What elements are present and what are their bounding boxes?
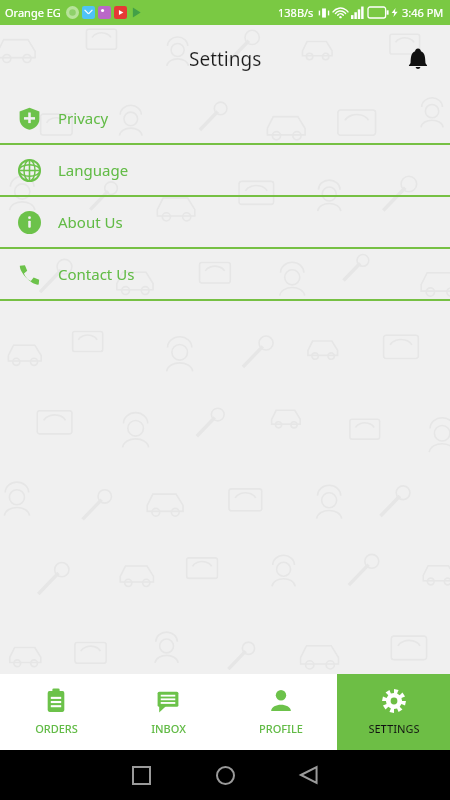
staticText: Orange EG	[5, 5, 61, 20]
staticText: Contact Us	[58, 264, 135, 284]
button[interactable]: Notifications	[396, 37, 440, 81]
button[interactable]: INBOX	[112, 674, 224, 750]
staticText: Privacy	[58, 108, 109, 128]
staticText: 138B/s	[278, 5, 314, 20]
button[interactable]: Contact Us	[0, 249, 450, 299]
button[interactable]: About Us	[0, 197, 450, 247]
button[interactable]: Back	[267, 750, 351, 800]
staticText: ORDERS	[35, 721, 78, 736]
staticText: Settings	[189, 46, 262, 72]
button[interactable]: Privacy	[0, 93, 450, 143]
staticText: SETTINGS	[368, 721, 420, 736]
staticText: 3:46 PM	[402, 5, 444, 20]
button[interactable]: SETTINGS	[337, 674, 450, 750]
staticText: INBOX	[151, 721, 186, 736]
button[interactable]: PROFILE	[224, 674, 337, 750]
staticText: Language	[58, 160, 129, 180]
staticText: PROFILE	[259, 721, 303, 736]
button[interactable]: Recents	[99, 750, 183, 800]
button[interactable]: Home	[183, 750, 267, 800]
button[interactable]: Language	[0, 145, 450, 195]
button[interactable]: ORDERS	[0, 674, 112, 750]
staticText: About Us	[58, 212, 123, 232]
